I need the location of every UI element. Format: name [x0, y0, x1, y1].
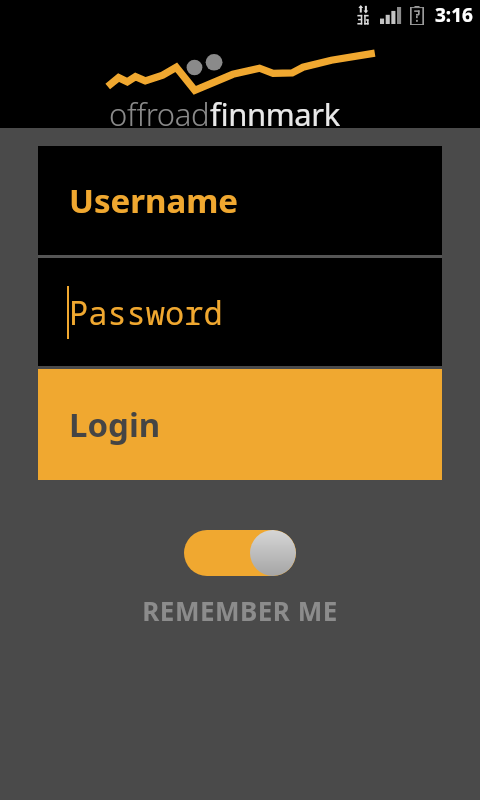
staticText: finnmark [210, 93, 340, 135]
button[interactable]: Remember me toggle, on [184, 530, 296, 576]
button[interactable]: Login [38, 369, 442, 480]
button[interactable]: Username [38, 146, 442, 255]
staticText: Password [69, 291, 223, 335]
staticText: REMEMBER ME [142, 593, 338, 628]
staticText: Username [69, 178, 239, 223]
staticText: Login [69, 402, 161, 447]
staticText: offroad [109, 93, 210, 135]
staticText: 3:16 [435, 2, 473, 28]
button[interactable]: Password [38, 258, 442, 366]
button[interactable]: REMEMBER ME [0, 593, 480, 628]
